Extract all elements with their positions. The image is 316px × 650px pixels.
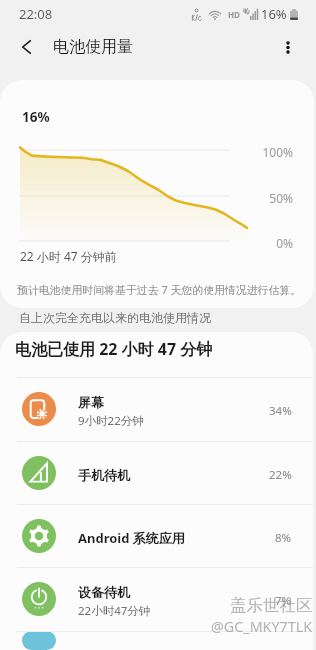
staticText: 16% [22,108,50,126]
button[interactable]: 屏幕 [0,377,313,441]
button[interactable]: Android 系统应用 [0,504,313,567]
staticText: 手机待机 [78,467,130,483]
staticText: 盖乐世社区 [230,595,313,616]
staticText: Android 系统应用 [78,529,185,547]
staticText: 9小时22分钟 [78,413,144,429]
staticText: 7% [275,593,292,609]
staticText: HD [228,9,240,20]
staticText: 自上次完全充电以来的电池使用情况 [19,310,211,325]
staticText: 设备待机 [78,584,130,600]
staticText: 8% [275,530,292,546]
staticText: 22% [269,467,292,483]
staticText: 电池已使用 22 小时 47 分钟 [15,338,213,360]
staticText: 50% [0,190,293,206]
button[interactable]: 手机待机 [0,441,313,504]
staticText: 0% [0,235,293,251]
staticText: 电池使用量 [53,37,133,57]
staticText: 22 小时 47 分钟前 [20,248,117,264]
button[interactable]: Back [0,28,53,66]
staticText: 16% [261,5,287,23]
staticText: @GC_MKY7TLK [211,617,313,636]
staticText: 34% [269,403,292,419]
button[interactable]: More options [266,28,310,66]
staticText: 22小时47分钟 [78,603,151,619]
button[interactable]: 设备待机 [0,567,313,631]
button[interactable] [0,631,313,650]
staticText: 22:08 [19,5,53,23]
staticText: 屏幕 [78,394,104,410]
staticText: 预计电池使用时间将基于过去 7 天您的使用情况进行估算。 [17,282,302,297]
staticText: 100% [0,144,293,160]
